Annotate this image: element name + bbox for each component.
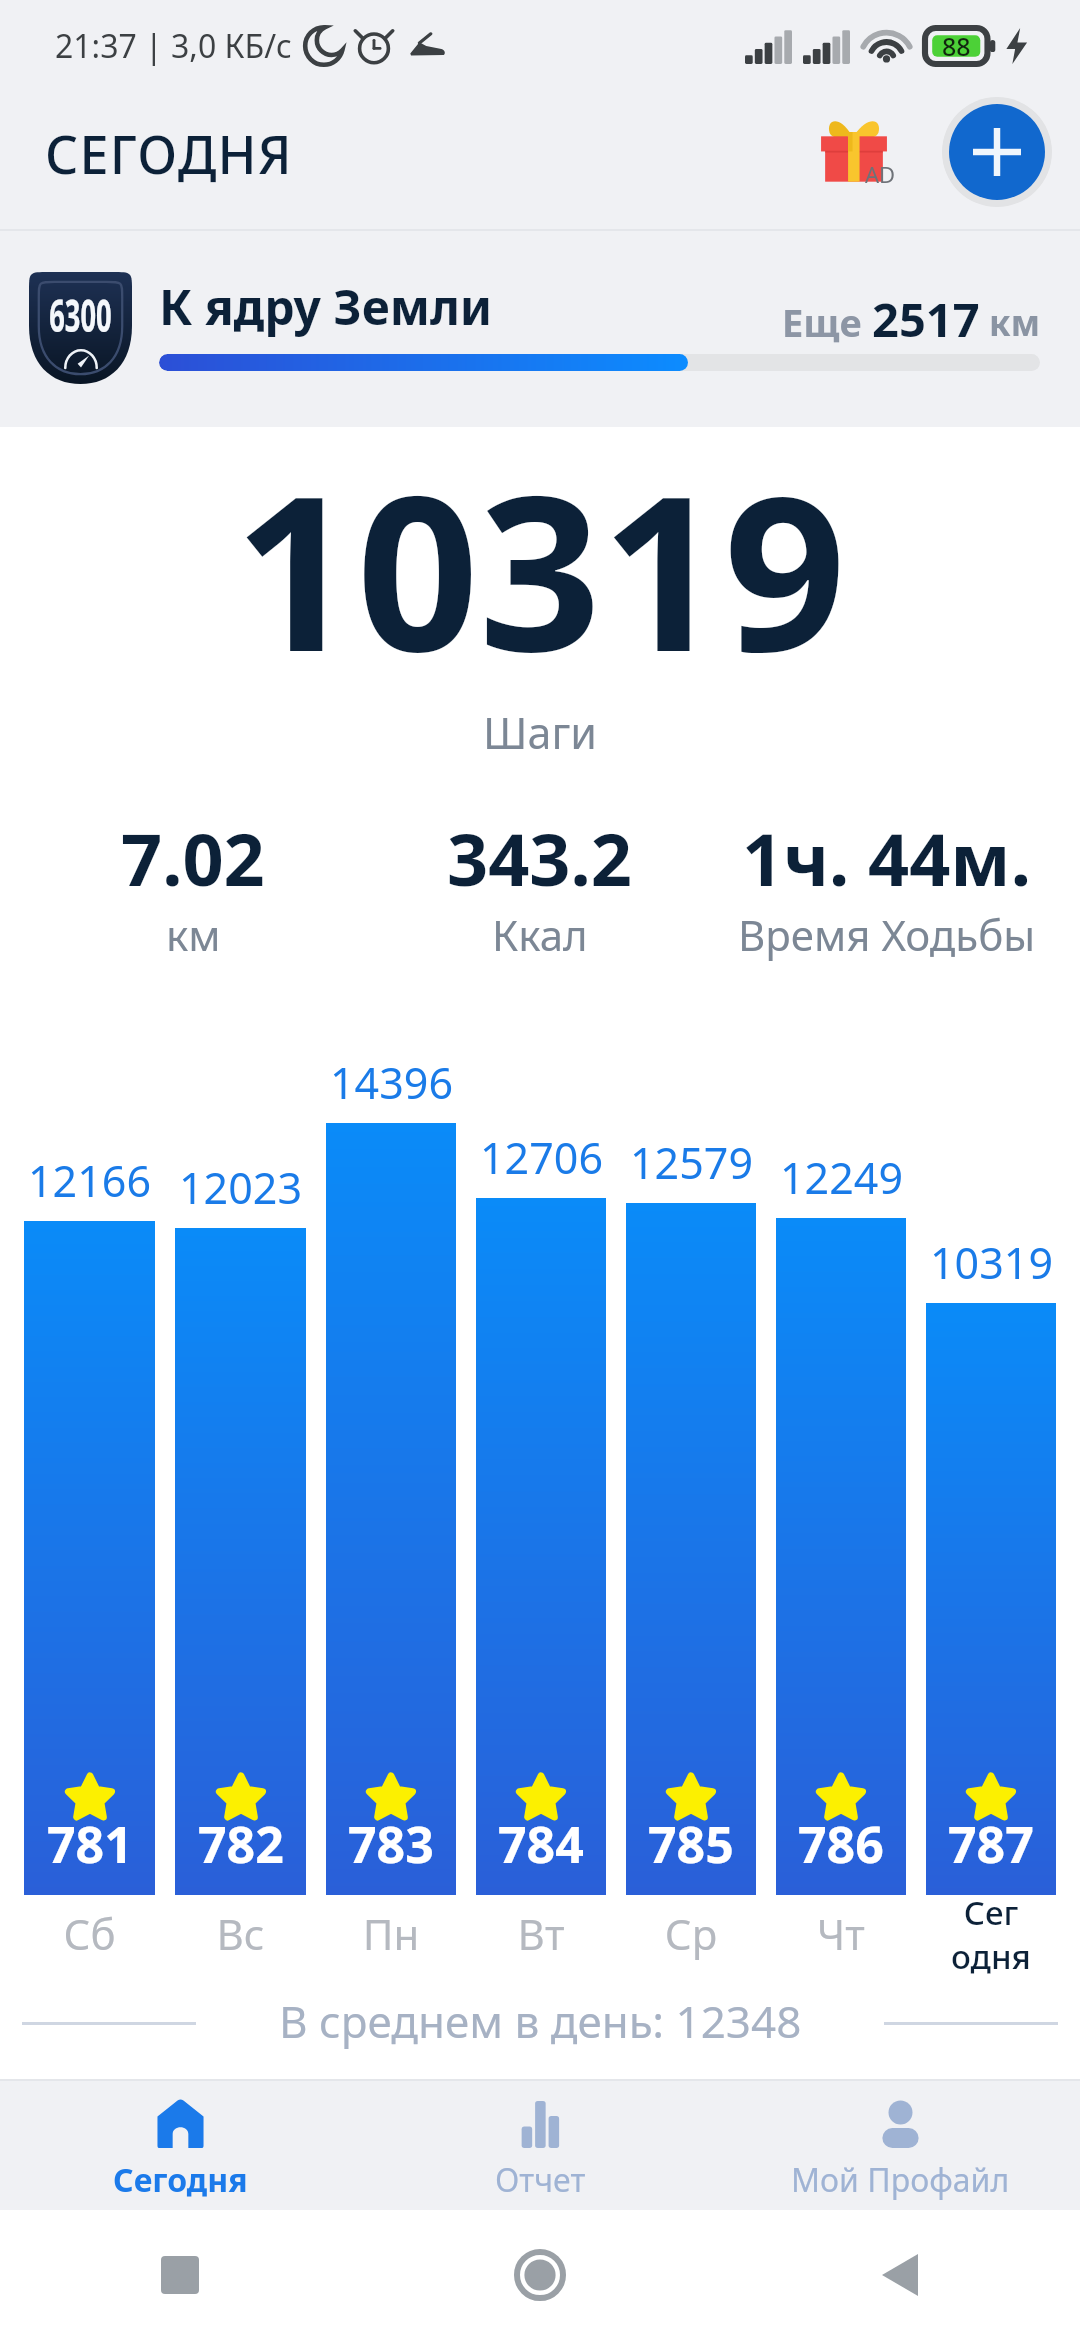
staticText: 12579	[630, 1133, 753, 1192]
button[interactable]: 12023	[175, 1013, 306, 1895]
staticText: AD	[865, 159, 896, 189]
staticText: Время Ходьбы	[738, 906, 1036, 963]
button[interactable]: 343.2	[366, 809, 713, 907]
staticText: км	[980, 299, 1040, 347]
staticText: км	[166, 906, 221, 963]
staticText: Отчет	[495, 2158, 586, 2202]
staticText: Пн	[326, 1905, 456, 1962]
button[interactable]: 14396	[326, 1013, 456, 1895]
button[interactable]: 10319	[926, 1013, 1056, 1895]
staticText: 787	[948, 1810, 1034, 1878]
staticText: 6300	[49, 285, 112, 345]
staticText: Вт	[476, 1905, 606, 1962]
staticText: 785	[648, 1810, 734, 1878]
staticText: 88	[942, 29, 971, 63]
staticText: 14396	[330, 1053, 453, 1112]
staticText: 786	[798, 1810, 884, 1878]
button[interactable]: 6300	[0, 231, 1080, 427]
button[interactable]: 12706	[476, 1013, 606, 1895]
button[interactable]: Мой Профайл	[720, 2079, 1080, 2210]
button[interactable]: Ккал	[366, 906, 713, 963]
button[interactable]: 1ч. 44м.	[713, 809, 1060, 907]
staticText: 12249	[780, 1148, 903, 1207]
staticText: 12023	[179, 1158, 302, 1217]
staticText: Еще	[782, 296, 872, 348]
staticText: 21:37 | 3,0 КБ/с	[55, 24, 292, 68]
staticText: 783	[348, 1810, 434, 1878]
staticText: Чт	[776, 1905, 906, 1962]
staticText: Вс	[175, 1905, 306, 1962]
staticText: В среднем в день: 12348	[279, 1991, 802, 2051]
staticText: Ккал	[492, 906, 588, 963]
staticText: 1ч. 44м.	[742, 809, 1031, 907]
staticText: 12166	[28, 1151, 151, 1210]
staticText: 784	[498, 1810, 584, 1878]
staticText: Сегодня	[113, 2158, 248, 2202]
staticText: Сег одня	[926, 1890, 1056, 1978]
button[interactable]: 7.02	[20, 809, 366, 907]
button[interactable]: 12166	[24, 1013, 155, 1895]
staticText: Ср	[626, 1905, 756, 1962]
button[interactable]: Подарок реклама	[806, 109, 902, 205]
button[interactable]: 12249	[776, 1013, 906, 1895]
staticText: Шаги	[483, 703, 597, 762]
staticText: 781	[47, 1810, 133, 1878]
button[interactable]: Сегодня	[0, 2079, 360, 2210]
staticText: 7.02	[121, 809, 265, 907]
staticText: 782	[198, 1810, 284, 1878]
button[interactable]: Время Ходьбы	[713, 906, 1060, 963]
staticText: 343.2	[447, 809, 632, 907]
staticText: 10319	[234, 422, 847, 662]
button[interactable]: Добавить	[942, 97, 1052, 207]
staticText: 10319	[930, 1233, 1053, 1292]
staticText: 12706	[480, 1128, 603, 1187]
staticText: Мой Профайл	[791, 2158, 1010, 2202]
button[interactable]: км	[20, 906, 366, 963]
button[interactable]: Отчет	[360, 2079, 720, 2210]
staticText: Сб	[24, 1905, 155, 1962]
staticText: СЕГОДНЯ	[45, 118, 293, 189]
staticText: 2517	[872, 287, 980, 351]
button[interactable]: 12579	[626, 1013, 756, 1895]
staticText: К ядру Земли	[159, 274, 493, 339]
